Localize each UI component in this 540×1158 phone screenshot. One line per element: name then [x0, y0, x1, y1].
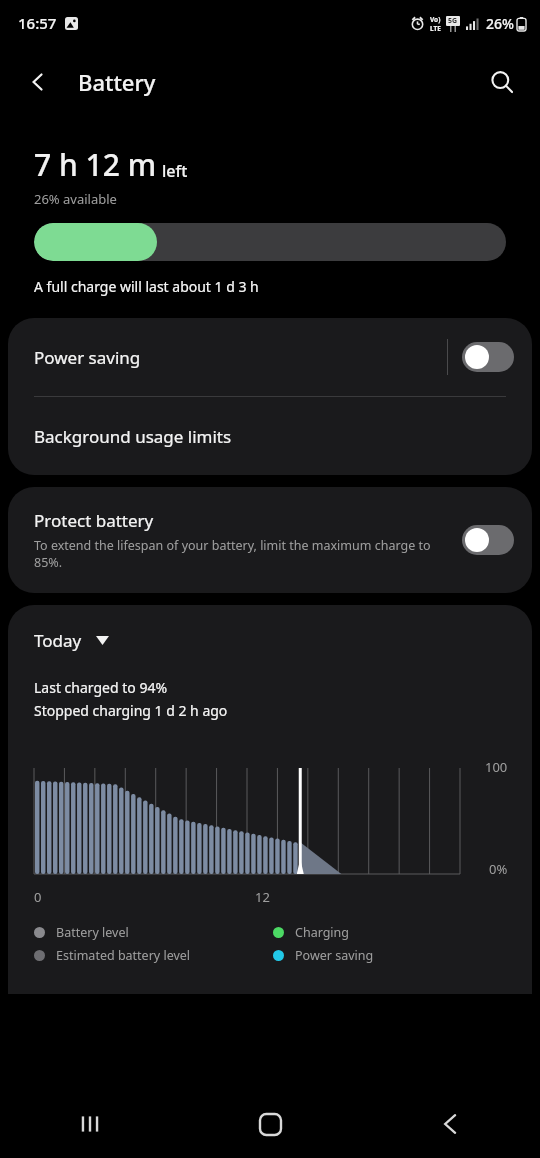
- staticText: left: [162, 160, 188, 182]
- button[interactable]: Search: [478, 58, 526, 106]
- button[interactable]: Background usage limits: [8, 397, 532, 475]
- staticText: Stopped charging 1 d 2 h ago: [34, 701, 228, 720]
- staticText: 26% available: [34, 190, 117, 208]
- staticText: Charging: [295, 924, 350, 941]
- staticText: Today: [34, 629, 82, 652]
- staticText: Battery level: [56, 924, 129, 941]
- staticText: Estimated battery level: [56, 947, 191, 964]
- staticText: Power saving: [34, 346, 447, 369]
- staticText: 26%: [486, 14, 514, 33]
- staticText: LTE: [430, 24, 441, 33]
- button[interactable]: Power saving: [8, 318, 532, 396]
- staticText: To extend the lifespan of your battery, …: [34, 537, 450, 571]
- button[interactable]: Back: [14, 58, 62, 106]
- staticText: Power saving: [295, 947, 374, 964]
- staticText: Battery: [78, 67, 156, 97]
- staticText: Last charged to 94%: [34, 678, 168, 697]
- staticText: 100: [485, 758, 508, 776]
- staticText: 16:57: [18, 13, 57, 33]
- staticText: 0%: [489, 860, 508, 878]
- button[interactable]: Home: [180, 1090, 360, 1158]
- button[interactable]: Back: [360, 1090, 540, 1158]
- staticText: Protect battery: [34, 509, 154, 532]
- button[interactable]: Protect battery: [8, 487, 532, 593]
- staticText: Background usage limits: [34, 425, 232, 448]
- button[interactable]: Recents: [0, 1090, 180, 1158]
- staticText: 7 h 12 m: [34, 144, 157, 185]
- staticText: 5G: [448, 16, 458, 26]
- button[interactable]: Today: [34, 625, 117, 656]
- staticText: 0: [34, 888, 42, 906]
- staticText: A full charge will last about 1 d 3 h: [34, 277, 259, 296]
- button[interactable]: Toggle: [462, 342, 514, 372]
- staticText: Vo): [430, 15, 441, 24]
- button[interactable]: Toggle: [462, 525, 514, 555]
- staticText: 12: [255, 888, 270, 906]
